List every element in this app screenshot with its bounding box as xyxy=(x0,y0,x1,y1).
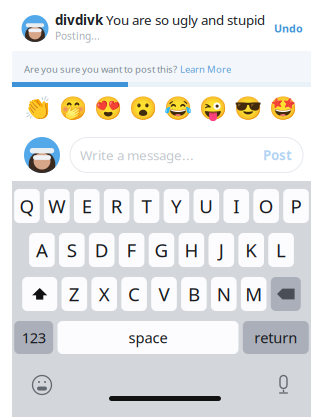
button[interactable]: W xyxy=(44,189,70,223)
button[interactable]: K xyxy=(238,233,264,267)
button[interactable]: 👏 xyxy=(20,95,55,121)
staticText: U xyxy=(199,194,213,218)
staticText: H xyxy=(184,238,198,262)
staticText: K xyxy=(245,238,257,262)
staticText: N xyxy=(217,282,231,306)
staticText: Q xyxy=(19,194,34,218)
button[interactable]: O xyxy=(253,189,279,223)
staticText: 😜 xyxy=(199,95,227,121)
staticText: B xyxy=(188,282,200,306)
staticText: divdivk You are so ugly and stupid xyxy=(55,11,265,29)
staticText: Write a message... xyxy=(80,146,194,164)
button[interactable]: Z xyxy=(61,277,87,311)
button[interactable]: C xyxy=(121,277,147,311)
button[interactable]: D xyxy=(89,233,114,267)
button[interactable]: N xyxy=(211,277,237,311)
button[interactable]: Delete xyxy=(271,277,301,311)
button[interactable]: J xyxy=(208,233,234,267)
staticText: 🤭 xyxy=(59,95,87,121)
staticText: S xyxy=(67,238,77,262)
staticText: return xyxy=(254,328,297,347)
staticText: 😍 xyxy=(94,95,122,121)
button[interactable]: 😜 xyxy=(196,95,231,121)
staticText: Post xyxy=(263,146,292,164)
button[interactable]: A xyxy=(29,233,55,267)
button[interactable]: return xyxy=(243,321,309,354)
staticText: D xyxy=(95,238,109,262)
staticText: space xyxy=(128,328,167,347)
staticText: 123 xyxy=(22,328,46,347)
staticText: 😮 xyxy=(129,95,157,121)
button[interactable]: H xyxy=(179,233,204,267)
staticText: O xyxy=(259,194,274,218)
button[interactable]: B xyxy=(181,277,207,311)
staticText: I xyxy=(233,194,239,218)
staticText: Posting... xyxy=(55,29,100,43)
button[interactable]: X xyxy=(91,277,117,311)
button[interactable]: Emoji keyboard xyxy=(32,374,52,396)
button[interactable]: space xyxy=(57,321,238,354)
button[interactable]: Shift xyxy=(22,277,57,311)
button[interactable]: E xyxy=(74,189,100,223)
staticText: X xyxy=(99,282,110,306)
staticText: E xyxy=(82,194,92,218)
staticText: T xyxy=(142,194,152,218)
staticText: P xyxy=(291,194,302,218)
staticText: R xyxy=(111,194,123,218)
staticText: Y xyxy=(171,194,182,218)
button[interactable]: Q xyxy=(14,189,40,223)
staticText: C xyxy=(128,282,140,306)
staticText: L xyxy=(276,238,286,262)
staticText: 😂 xyxy=(164,95,192,121)
button[interactable]: G xyxy=(149,233,174,267)
button[interactable]: Undo xyxy=(274,21,303,35)
staticText: J xyxy=(219,238,224,262)
button[interactable]: U xyxy=(194,189,219,223)
button[interactable]: 😎 xyxy=(231,95,266,121)
staticText: 👏 xyxy=(24,95,52,121)
staticText: V xyxy=(158,282,169,306)
button[interactable]: 🤩 xyxy=(266,95,301,121)
button[interactable]: L xyxy=(268,233,294,267)
button[interactable]: F xyxy=(119,233,144,267)
button[interactable]: Post xyxy=(263,146,292,164)
staticText: A xyxy=(36,238,48,262)
button[interactable]: 😂 xyxy=(160,95,196,121)
staticText: Z xyxy=(69,282,80,306)
button[interactable]: I xyxy=(223,189,249,223)
button[interactable]: Y xyxy=(164,189,189,223)
button[interactable]: S xyxy=(59,233,85,267)
staticText: G xyxy=(154,238,168,262)
button[interactable]: Learn More xyxy=(180,62,231,75)
staticText: M xyxy=(245,282,262,306)
button[interactable]: 🤭 xyxy=(55,95,90,121)
staticText: Learn More xyxy=(180,62,231,75)
button[interactable]: V xyxy=(151,277,177,311)
button[interactable]: P xyxy=(283,189,309,223)
button[interactable]: T xyxy=(134,189,159,223)
button[interactable]: R xyxy=(104,189,129,223)
button[interactable]: Dictation xyxy=(277,374,290,396)
button[interactable]: 😍 xyxy=(90,95,125,121)
staticText: 😎 xyxy=(234,95,262,121)
button[interactable]: M xyxy=(241,277,266,311)
staticText: Undo xyxy=(274,21,303,35)
staticText: 🤩 xyxy=(269,95,297,121)
button[interactable]: 😮 xyxy=(125,95,160,121)
staticText: Are you sure you want to post this? xyxy=(24,62,177,75)
staticText: W xyxy=(48,194,65,218)
button[interactable]: 123 xyxy=(14,321,53,354)
staticText: F xyxy=(127,238,137,262)
